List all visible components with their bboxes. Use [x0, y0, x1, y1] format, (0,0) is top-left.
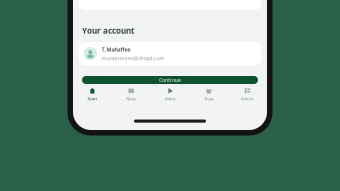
staticText: muntermann@dropit.com [101, 55, 164, 62]
staticText: Start [87, 96, 97, 101]
button[interactable]: Videos [151, 88, 189, 101]
button[interactable]: Shop [189, 88, 228, 101]
staticText: T. Mahaffee [101, 46, 130, 53]
staticText: News [126, 96, 136, 101]
staticText: Shop [204, 96, 213, 101]
button[interactable]: T. Mahaffee [78, 42, 261, 65]
staticText: Videos [164, 96, 175, 101]
staticText: Your account [82, 25, 134, 36]
button[interactable]: Admin [228, 88, 267, 101]
button[interactable]: Continue [82, 76, 258, 84]
staticText: Continue [159, 76, 181, 84]
button[interactable]: Start [73, 88, 112, 101]
staticText: Admin [241, 96, 254, 101]
button[interactable]: News [112, 88, 151, 101]
